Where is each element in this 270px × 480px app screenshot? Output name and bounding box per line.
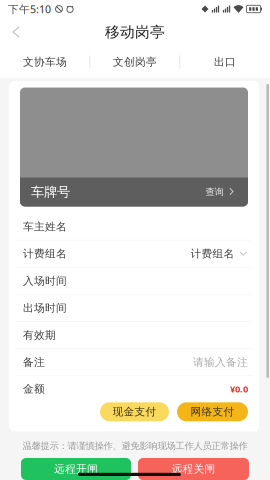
staticText: 请输入备注 [193, 356, 248, 369]
button[interactable]: 网络支付 [177, 402, 248, 421]
button[interactable]: 入场时间 [9, 268, 259, 295]
button[interactable]: 现金支付 [100, 402, 169, 421]
staticText: 网络支付 [190, 405, 234, 418]
button[interactable]: 金额 [9, 376, 259, 402]
staticText: 远程开闸 [54, 462, 98, 475]
button[interactable]: 文创岗亭 [90, 46, 179, 78]
staticText: 温馨提示：请谨慎操作、避免影响现场工作人员正常操作 [22, 440, 247, 452]
staticText: 下午5:10 [8, 2, 51, 16]
staticText: 入场时间 [23, 274, 67, 287]
button[interactable]: 车主姓名 [9, 213, 259, 241]
staticText: 计费组名 [190, 247, 234, 260]
staticText: 出口 [214, 55, 236, 68]
button[interactable]: 远程开闸 [21, 458, 131, 480]
staticText: ¥0.0 [230, 383, 248, 395]
button[interactable]: 有效期 [9, 322, 259, 349]
button[interactable]: 备注 [9, 349, 259, 376]
button[interactable]: 查询 [205, 186, 234, 198]
button[interactable]: 远程关闸 [138, 458, 249, 480]
staticText: 移动岗亭 [105, 23, 165, 41]
staticText: 远程关闸 [171, 462, 215, 475]
staticText: 文创岗亭 [113, 55, 157, 68]
staticText: 车主姓名 [23, 220, 67, 233]
button[interactable]: Back [0, 18, 32, 46]
button[interactable]: 计费组名 [9, 241, 259, 268]
staticText: 查询 [205, 186, 223, 198]
staticText: 备注 [23, 356, 45, 369]
staticText: 现金支付 [112, 405, 156, 418]
button[interactable]: 出口 [180, 46, 269, 78]
staticText: 金额 [23, 382, 45, 395]
staticText: 文协车场 [23, 55, 67, 68]
staticText: 出场时间 [23, 301, 67, 314]
staticText: 有效期 [23, 328, 56, 342]
button[interactable]: 文协车场 [0, 46, 89, 78]
button[interactable]: 出场时间 [9, 295, 259, 322]
staticText: 车牌号 [31, 184, 70, 200]
staticText: 计费组名 [23, 247, 67, 260]
